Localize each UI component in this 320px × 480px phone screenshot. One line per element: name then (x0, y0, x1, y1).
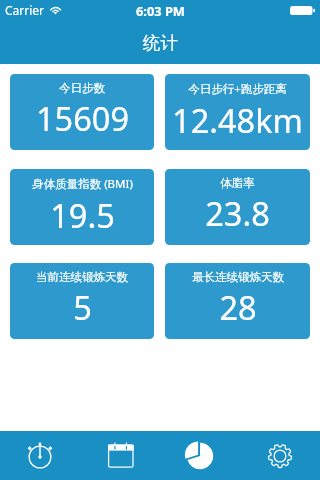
staticText: 身体质量指数 (BMI) (32, 176, 133, 192)
staticText: 统计 (143, 32, 178, 54)
staticText: 23.8 (205, 191, 270, 235)
button[interactable]: 今日步数 (10, 74, 154, 150)
staticText: 28 (219, 285, 257, 329)
staticText: 15609 (36, 96, 129, 140)
staticText: 今日步数 (59, 81, 105, 95)
staticText: 今日步行+跑步距离 (188, 81, 287, 97)
staticText: 5 (73, 285, 92, 329)
staticText: 当前连续锻炼天数 (36, 270, 128, 284)
button[interactable]: Calendar (80, 431, 160, 480)
button[interactable]: Statistics (160, 431, 240, 480)
staticText: 12.48km (172, 98, 303, 142)
staticText: Carrier (5, 2, 45, 18)
button[interactable]: Stopwatch (0, 431, 80, 480)
staticText: 最长连续锻炼天数 (192, 270, 284, 284)
staticText: 6:03 PM (136, 2, 185, 19)
button[interactable]: 今日步行+跑步距离 (165, 74, 310, 150)
staticText: 体脂率 (220, 176, 255, 190)
button[interactable]: 体脂率 (165, 169, 310, 245)
button[interactable]: 当前连续锻炼天数 (10, 263, 154, 339)
button[interactable]: 最长连续锻炼天数 (165, 263, 310, 339)
button[interactable]: 身体质量指数 (BMI) (10, 169, 154, 245)
button[interactable]: Settings (240, 431, 320, 480)
staticText: 19.5 (50, 193, 115, 237)
